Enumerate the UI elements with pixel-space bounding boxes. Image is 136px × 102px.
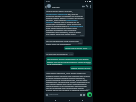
- button[interactable]: Video call: [81, 4, 85, 8]
- staticText: At vero eos accusamus iusto.: [46, 53, 73, 56]
- staticText: 9:41: [46, 0, 51, 3]
- button[interactable]: Nemo enim ipsam quia.: [64, 46, 92, 50]
- button[interactable]: Lorem ipsum dolor sit amet, consectetur …: [45, 9, 85, 37]
- staticText: 10:24: [87, 63, 91, 65]
- button[interactable]: Itaque earum rerum.: [70, 66, 92, 70]
- button[interactable]: Sed ut perspiciatis unde omnis iste natu…: [45, 39, 83, 45]
- staticText: 10:24: [87, 68, 91, 70]
- staticText: 10:24: [87, 48, 91, 50]
- button[interactable]: Home: [67, 98, 71, 102]
- staticText: 10:24: [78, 43, 82, 45]
- button[interactable]: At vero eos accusamus iusto.: [45, 52, 74, 56]
- button[interactable]: Call: [85, 4, 89, 8]
- button[interactable]: Recents: [80, 98, 84, 102]
- staticText: Temporibus autem quibusdam et aut offici…: [47, 58, 91, 65]
- button[interactable]: Back: [44, 5, 47, 8]
- button[interactable]: Back: [53, 98, 57, 102]
- staticText: 10:24: [86, 89, 90, 91]
- staticText: Nemo enim ipsam quia.: [65, 47, 88, 50]
- staticText: 10:24: [69, 54, 73, 56]
- button[interactable]: Message: [45, 92, 86, 97]
- staticText: Lorem ipsum dolor sit amet, consectetur …: [46, 10, 84, 35]
- button[interactable]: Temporibus autem quibusdam et aut offici…: [46, 57, 92, 65]
- staticText: Daniel: [52, 5, 60, 8]
- button[interactable]: More options: [89, 5, 92, 8]
- button[interactable]: Nam libero tempore, cum soluta nobis est…: [45, 71, 91, 91]
- staticText: Nam libero tempore, cum soluta nobis est…: [46, 72, 90, 91]
- staticText: Sed ut perspiciatis unde omnis iste natu…: [46, 40, 82, 45]
- button[interactable]: Send voice message: [87, 92, 92, 97]
- staticText: 10:24: [80, 35, 84, 37]
- staticText: Message: [49, 93, 59, 96]
- staticText: Itaque earum rerum.: [71, 67, 91, 70]
